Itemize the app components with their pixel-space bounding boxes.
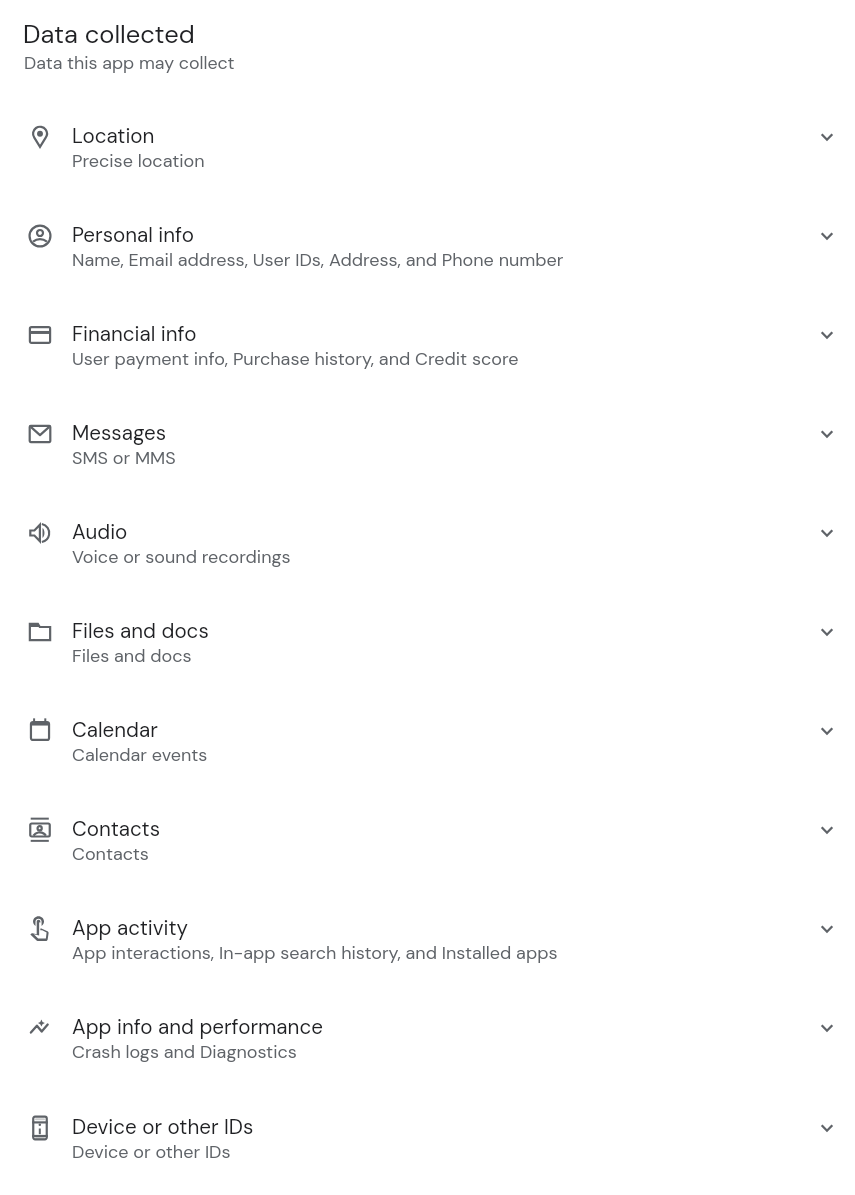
staticText: Name, Email address, User IDs, Address, … xyxy=(72,248,807,271)
staticText: App info and performance xyxy=(72,1014,807,1041)
button[interactable]: Calendar xyxy=(0,681,855,780)
staticText: Precise location xyxy=(72,149,807,172)
staticText: Calendar events xyxy=(72,743,807,766)
staticText: Audio xyxy=(72,519,807,546)
other: Expand App activity xyxy=(813,915,841,943)
staticText: Contacts xyxy=(72,842,807,865)
staticText: Crash logs and Diagnostics xyxy=(72,1040,807,1063)
staticText: Data this app may collect xyxy=(24,51,235,74)
staticText: Voice or sound recordings xyxy=(72,545,807,568)
staticText: Calendar xyxy=(72,717,807,744)
other: Expand Calendar xyxy=(813,717,841,745)
staticText: Device or other IDs xyxy=(72,1114,807,1141)
button[interactable]: App info and performance xyxy=(0,978,855,1077)
other: Expand Contacts xyxy=(813,816,841,844)
staticText: Files and docs xyxy=(72,644,807,667)
button[interactable]: Messages xyxy=(0,384,855,483)
staticText: Location xyxy=(72,123,807,150)
staticText: Personal info xyxy=(72,222,807,249)
staticText: User payment info, Purchase history, and… xyxy=(72,347,807,370)
staticText: Contacts xyxy=(72,816,807,843)
other: Expand Personal info xyxy=(813,222,841,250)
staticText: App activity xyxy=(72,915,807,942)
staticText: App interactions, In-app search history,… xyxy=(72,941,807,964)
staticText: Files and docs xyxy=(72,618,807,645)
other: Expand Financial info xyxy=(813,321,841,349)
staticText: Financial info xyxy=(72,321,807,348)
other: Expand Messages xyxy=(813,420,841,448)
staticText: Data collected xyxy=(23,18,195,51)
other: Expand Device or other IDs xyxy=(813,1114,841,1142)
button[interactable]: App activity xyxy=(0,879,855,978)
other: Expand App info and performance xyxy=(813,1014,841,1042)
staticText: Messages xyxy=(72,420,807,447)
other: Expand Audio xyxy=(813,519,841,547)
other: Expand Files and docs xyxy=(813,618,841,646)
other: Expand Location xyxy=(813,123,841,151)
staticText: SMS or MMS xyxy=(72,446,807,469)
button[interactable]: Files and docs xyxy=(0,582,855,681)
button[interactable]: Personal info xyxy=(0,186,855,285)
button[interactable]: Audio xyxy=(0,483,855,582)
staticText: Device or other IDs xyxy=(72,1140,807,1163)
button[interactable]: Device or other IDs xyxy=(0,1078,855,1177)
button[interactable]: Financial info xyxy=(0,285,855,384)
button[interactable]: Location xyxy=(0,87,855,186)
button[interactable]: Contacts xyxy=(0,780,855,879)
